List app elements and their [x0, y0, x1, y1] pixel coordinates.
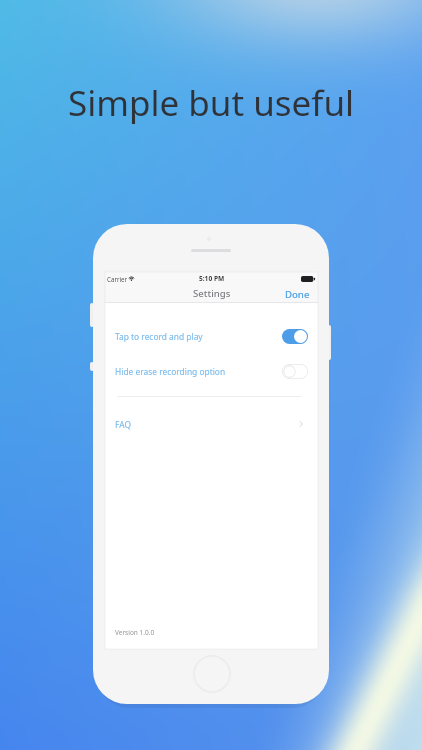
- button[interactable]: Hide erase recording option: [105, 357, 318, 385]
- staticText: Hide erase recording option: [115, 366, 226, 377]
- staticText: Simple but useful: [0, 79, 422, 127]
- staticText: FAQ: [115, 419, 131, 430]
- staticText: Version 1.0.0: [115, 628, 155, 637]
- staticText: Done: [285, 288, 310, 299]
- staticText: Tap to record and play: [115, 331, 203, 342]
- staticText: Carrier: [107, 275, 128, 283]
- button[interactable]: Tap to record and play: [105, 322, 318, 350]
- staticText: Settings: [193, 287, 231, 300]
- button[interactable]: FAQ: [105, 410, 318, 438]
- staticText: 5:10 PM: [199, 274, 225, 283]
- button[interactable]: Done: [275, 285, 318, 302]
